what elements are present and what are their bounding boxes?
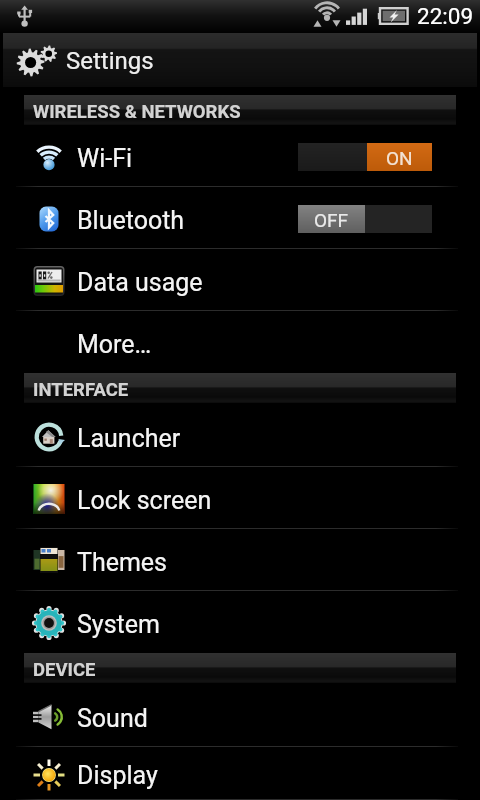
staticText: OFF <box>314 209 349 231</box>
staticText: Launcher <box>77 424 181 453</box>
button[interactable]: Bluetooth <box>0 187 480 249</box>
staticText: INTERFACE <box>33 379 129 401</box>
staticText: ON <box>386 147 413 169</box>
staticText: DEVICE <box>33 659 96 681</box>
button[interactable]: Display <box>0 747 480 800</box>
staticText: Themes <box>77 548 168 577</box>
staticText: Lock screen <box>77 486 212 515</box>
button[interactable]: Launcher <box>0 405 480 467</box>
staticText: Sound <box>77 704 148 733</box>
staticText: System <box>77 610 160 639</box>
staticText: Data usage <box>77 268 203 297</box>
button[interactable]: ON <box>298 143 432 171</box>
staticText: Wi-Fi <box>77 144 133 173</box>
button[interactable]: Data usage <box>0 249 480 311</box>
button[interactable]: System <box>0 591 480 653</box>
button[interactable]: Lock screen <box>0 467 480 529</box>
staticText: Bluetooth <box>77 206 185 235</box>
staticText: More… <box>77 330 152 359</box>
other: Settings <box>12 41 56 85</box>
button[interactable]: OFF <box>298 205 432 233</box>
button[interactable]: Sound <box>0 685 480 747</box>
button[interactable]: Themes <box>0 529 480 591</box>
button[interactable]: Settings <box>3 33 477 87</box>
button[interactable]: Wi-Fi <box>0 125 480 187</box>
staticText: Display <box>77 761 158 790</box>
staticText: Settings <box>66 47 154 75</box>
staticText: 22:09 <box>417 3 474 29</box>
staticText: WIRELESS & NETWORKS <box>33 101 241 123</box>
button[interactable]: More… <box>0 311 480 373</box>
